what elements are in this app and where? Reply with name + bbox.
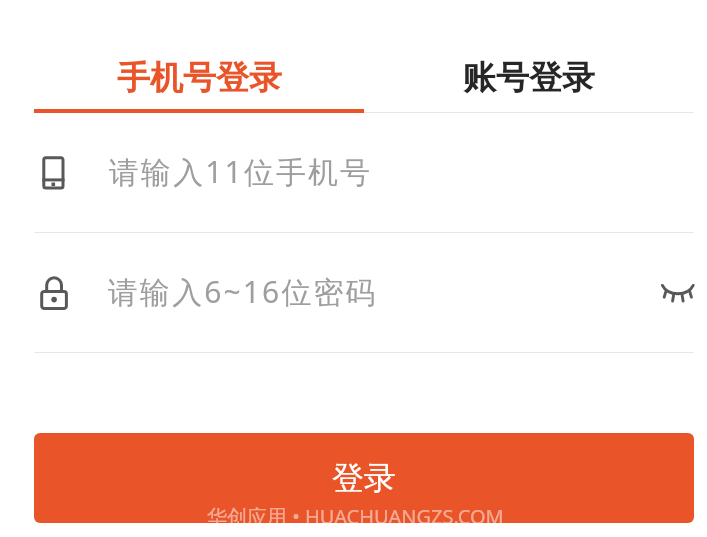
staticText: 登录 xyxy=(332,458,396,498)
button[interactable]: 登录 xyxy=(34,433,694,523)
button[interactable]: 账号登录 xyxy=(364,0,694,113)
staticText: 请输入6~16位密码 xyxy=(108,271,650,312)
staticText: 请输入11位手机号 xyxy=(109,151,373,192)
button[interactable]: 手机号登录 xyxy=(34,0,364,113)
button[interactable]: Show password xyxy=(657,271,701,315)
staticText: 手机号登录 xyxy=(117,57,282,99)
staticText: 华创应用 • HUACHUANGZS.COM xyxy=(207,503,504,525)
button[interactable]: 请输入11位手机号 xyxy=(34,113,694,232)
staticText: 账号登录 xyxy=(463,57,595,99)
